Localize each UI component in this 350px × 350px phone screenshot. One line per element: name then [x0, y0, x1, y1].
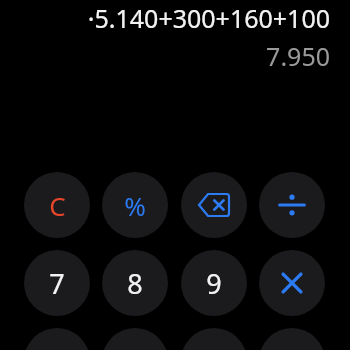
button[interactable]: Divide — [259, 172, 325, 238]
button[interactable]: Six — [181, 328, 247, 350]
staticText: 8 — [127, 265, 143, 302]
button[interactable]: Nine — [181, 250, 247, 316]
button[interactable]: Seven — [24, 250, 90, 316]
button[interactable]: Minus — [259, 328, 325, 350]
button[interactable]: Eight — [102, 250, 168, 316]
button[interactable]: Backspace — [181, 172, 247, 238]
button[interactable]: Clear — [24, 172, 90, 238]
staticText: % — [124, 188, 146, 223]
button[interactable]: Multiply — [259, 250, 325, 316]
button[interactable]: Four — [24, 328, 90, 350]
staticText: C — [49, 188, 66, 223]
staticText: ·5.140+300+160+100 — [20, 1, 330, 35]
button[interactable]: Percent — [102, 172, 168, 238]
staticText: 9 — [206, 265, 222, 302]
button[interactable]: Five — [102, 328, 168, 350]
staticText: 7 — [49, 265, 65, 302]
staticText: 7.950 — [20, 39, 330, 73]
